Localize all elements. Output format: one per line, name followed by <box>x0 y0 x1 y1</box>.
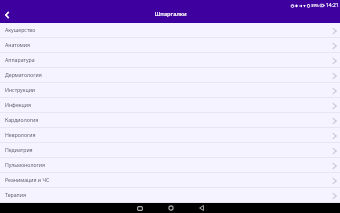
button[interactable]: Инфекция <box>0 98 340 113</box>
staticText: Инструкции <box>5 86 330 93</box>
staticText: Анатомия <box>5 41 330 48</box>
button[interactable]: Анатомия <box>0 38 340 53</box>
button[interactable]: Home <box>155 203 186 213</box>
staticText: Пульмонология <box>5 161 330 168</box>
staticText: 39% <box>311 3 319 8</box>
button[interactable]: Back <box>1 9 13 21</box>
staticText: Педиатрия <box>5 146 330 153</box>
staticText: Дерматология <box>5 71 330 78</box>
button[interactable]: Акушерство <box>0 23 340 38</box>
button[interactable]: Терапия <box>0 188 340 203</box>
button[interactable]: Пульмонология <box>0 158 340 173</box>
button[interactable]: Аппаратура <box>0 53 340 68</box>
button[interactable]: Кардиология <box>0 113 340 128</box>
button[interactable]: Инструкции <box>0 83 340 98</box>
staticText: Неврология <box>5 131 330 138</box>
staticText: Реанимация и ЧС <box>5 176 330 183</box>
staticText: Аппаратура <box>5 56 330 63</box>
button[interactable]: Дерматология <box>0 68 340 83</box>
staticText: Терапия <box>5 191 330 198</box>
button[interactable]: Back <box>186 203 217 213</box>
button[interactable]: Неврология <box>0 128 340 143</box>
staticText: Кардиология <box>5 116 330 123</box>
staticText: Акушерство <box>5 26 330 33</box>
button[interactable]: Реанимация и ЧС <box>0 173 340 188</box>
staticText: 14:21 <box>326 2 339 9</box>
staticText: Инфекция <box>5 101 330 108</box>
staticText: Шпаргалки <box>154 10 187 18</box>
button[interactable]: Recents <box>124 203 155 213</box>
button[interactable]: Педиатрия <box>0 143 340 158</box>
